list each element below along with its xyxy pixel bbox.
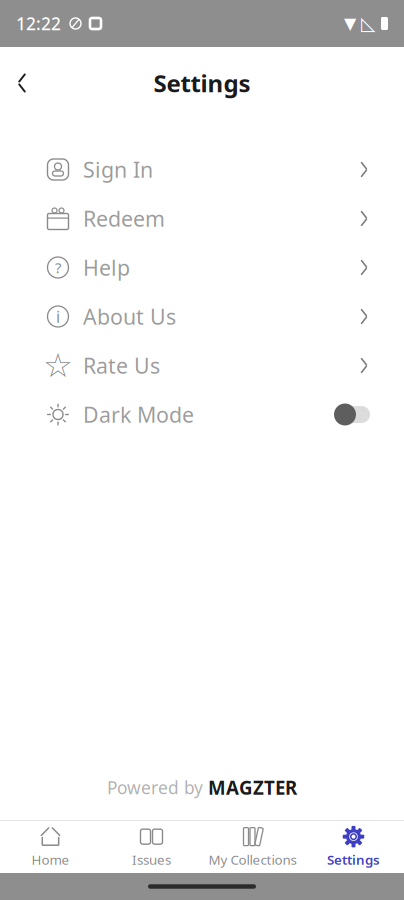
staticText: Redeem xyxy=(83,204,165,233)
button[interactable]: Home xyxy=(0,821,101,873)
staticText: ☆ xyxy=(43,347,73,384)
staticText: Settings xyxy=(327,851,380,868)
staticText: About Us xyxy=(83,302,176,331)
staticText: Issues xyxy=(132,851,171,868)
staticText: i xyxy=(56,306,60,327)
staticText: Dark Mode xyxy=(83,400,194,429)
button[interactable]: Settings xyxy=(303,821,404,873)
button[interactable]: i xyxy=(0,292,404,341)
staticText: Sign In xyxy=(83,155,153,184)
button[interactable]: ☆ xyxy=(0,341,404,390)
button[interactable]: Issues xyxy=(101,821,202,873)
staticText: ? xyxy=(55,258,61,277)
staticText: Rate Us xyxy=(83,351,160,380)
button[interactable]: Dark Mode xyxy=(0,390,404,439)
staticText: Settings xyxy=(153,67,250,99)
button[interactable]: Redeem xyxy=(0,194,404,243)
staticText: Help xyxy=(83,253,130,282)
button[interactable]: Back xyxy=(0,61,44,105)
staticText: Powered by xyxy=(107,776,203,799)
staticText: 12:22 xyxy=(16,12,61,35)
button[interactable]: Sign In xyxy=(0,145,404,194)
staticText: Home xyxy=(31,851,69,868)
staticText: My Collections xyxy=(208,851,296,868)
button[interactable]: My Collections xyxy=(202,821,303,873)
button[interactable]: ? xyxy=(0,243,404,292)
staticText: ◺ xyxy=(361,13,375,34)
staticText: ▼ xyxy=(344,14,356,33)
staticText: MAGZTER xyxy=(208,775,297,800)
